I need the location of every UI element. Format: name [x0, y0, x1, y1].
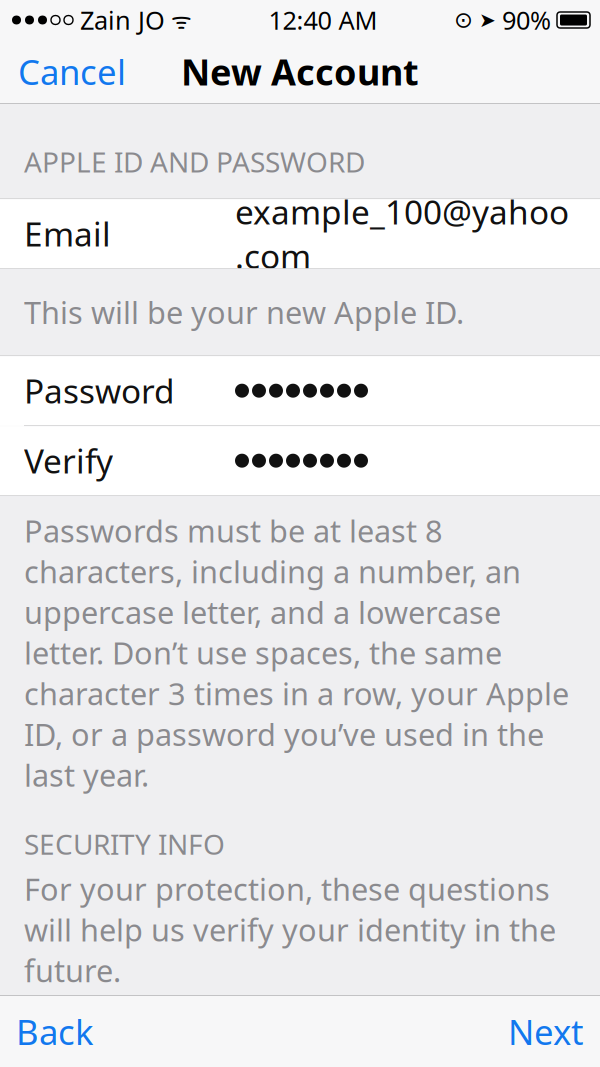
staticText: What was the first thing … — [235, 997, 520, 1067]
staticText: Zain JO — [73, 3, 165, 37]
button[interactable]: Password — [0, 356, 600, 425]
staticText: Password — [24, 369, 175, 413]
button[interactable]: Next — [508, 994, 600, 1067]
staticText: Verify — [24, 439, 113, 483]
staticText: New Account — [181, 48, 419, 95]
button[interactable]: Back — [0, 994, 94, 1067]
staticText: Back — [16, 1008, 94, 1054]
staticText: Next — [508, 1008, 584, 1054]
staticText: SECURITY INFO — [24, 825, 225, 862]
staticText: Cancel — [18, 48, 126, 94]
staticText: example_100@yahoo.com — [235, 189, 569, 278]
button[interactable]: Cancel — [0, 34, 126, 108]
staticText: ᯤ — [165, 5, 192, 35]
staticText: Passwords must be at least 8 characters,… — [24, 510, 569, 795]
staticText: Email — [24, 212, 111, 256]
button[interactable]: Verify — [0, 426, 600, 495]
staticText: Question — [24, 1019, 168, 1064]
staticText: APPLE ID AND PASSWORD — [24, 143, 365, 180]
staticText: For your protection, these questions wil… — [24, 868, 556, 991]
staticText: 90% — [502, 3, 551, 37]
staticText: › — [565, 1015, 578, 1067]
button[interactable]: Email — [0, 199, 600, 268]
staticText: ➤ — [479, 9, 496, 31]
staticText: 12:40 AM — [268, 3, 377, 37]
staticText: This will be your new Apple ID. — [24, 292, 464, 332]
button[interactable]: Question — [0, 1008, 600, 1067]
staticText: ⊙ — [454, 7, 473, 33]
